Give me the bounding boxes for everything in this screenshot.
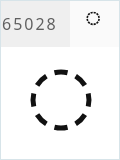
button[interactable]: 65028: [0, 0, 70, 47]
other: Progress: [28, 67, 94, 133]
button[interactable]: Loading: [85, 10, 102, 27]
staticText: 65028: [2, 13, 58, 35]
